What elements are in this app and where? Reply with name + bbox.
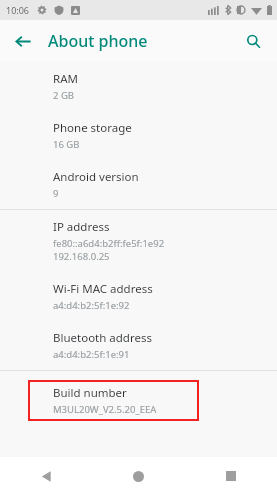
staticText: IP address — [53, 219, 110, 235]
button[interactable]: IP address — [0, 210, 277, 272]
button[interactable]: Back — [28, 458, 64, 494]
button[interactable]: Build number — [0, 371, 277, 430]
staticText: Wi-Fi MAC address — [53, 281, 153, 297]
button[interactable]: RAM — [0, 62, 277, 111]
staticText: Build number — [53, 385, 127, 401]
staticText: a4:d4:b2:5f:1e:92 — [53, 299, 130, 312]
staticText: Phone storage — [53, 120, 132, 136]
button[interactable]: Wi-Fi MAC address — [0, 272, 277, 321]
staticText: fe80::a6d4:b2ff:fe5f:1e92 — [53, 237, 165, 250]
staticText: M3UL20W_V2.5.20_EEA — [53, 403, 157, 416]
staticText: 16 GB — [53, 138, 80, 151]
staticText: a4:d4:b2:5f:1e:91 — [53, 348, 130, 361]
button[interactable]: Recent apps — [213, 458, 249, 494]
button[interactable]: Home — [120, 458, 156, 494]
button[interactable]: Bluetooth address — [0, 321, 277, 370]
button[interactable]: Android version — [0, 160, 277, 209]
staticText: 2 GB — [53, 89, 74, 102]
button[interactable]: Back — [8, 26, 38, 56]
staticText: 9 — [53, 187, 59, 200]
staticText: Bluetooth address — [53, 330, 152, 346]
button[interactable]: Search — [238, 26, 268, 56]
staticText: 10:06 — [6, 4, 30, 16]
staticText: Android version — [53, 169, 139, 185]
staticText: About phone — [48, 30, 148, 52]
staticText: 192.168.0.25 — [53, 250, 110, 263]
button[interactable]: Phone storage — [0, 111, 277, 160]
staticText: RAM — [53, 71, 78, 87]
